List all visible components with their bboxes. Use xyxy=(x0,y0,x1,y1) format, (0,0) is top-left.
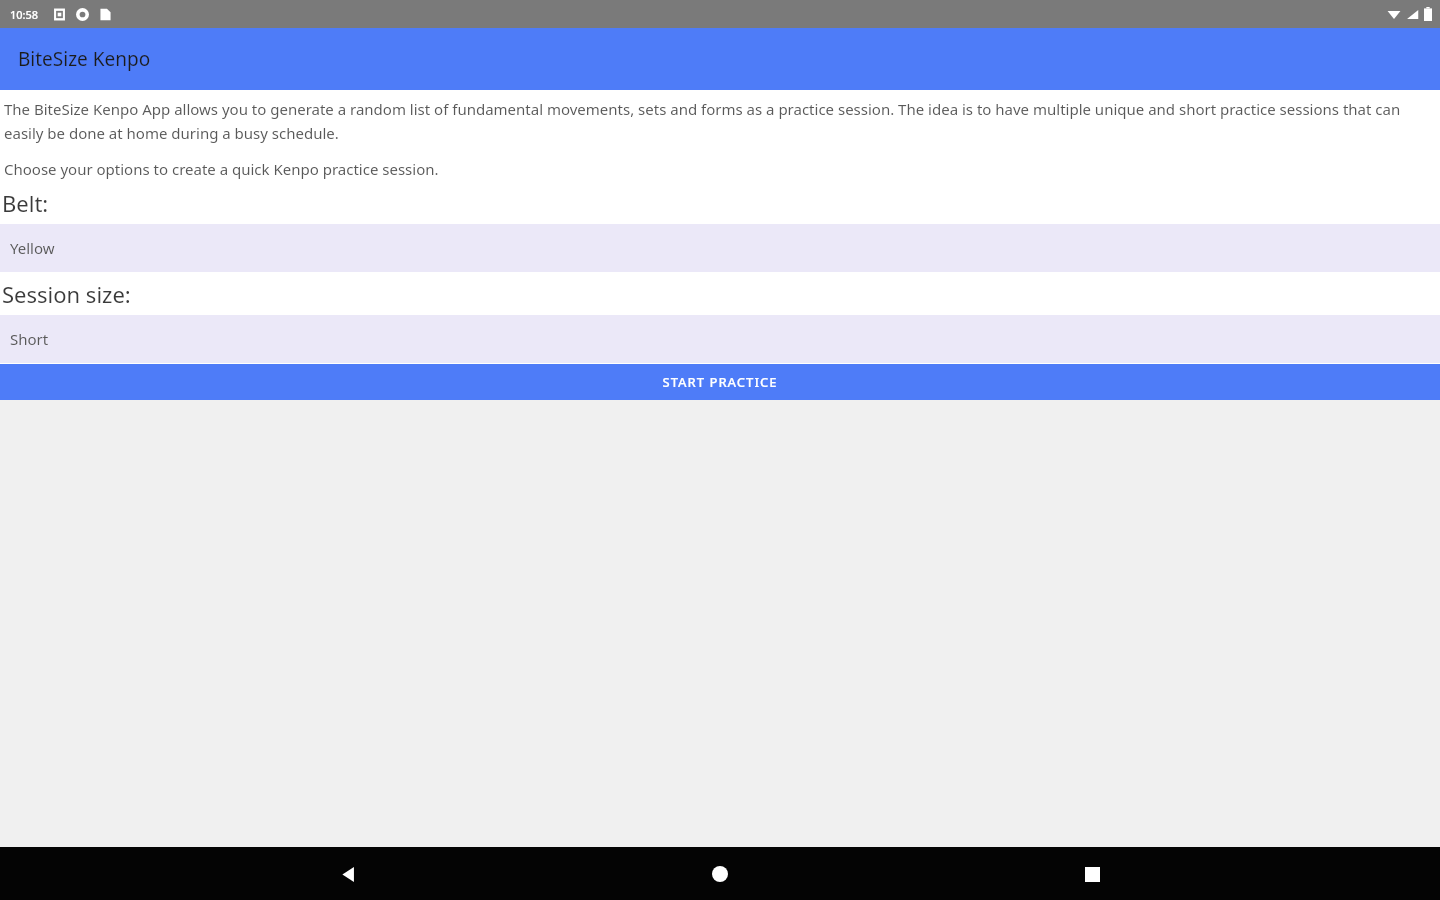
staticText: START PRACTICE xyxy=(662,373,778,391)
button[interactable]: Short xyxy=(0,315,1440,363)
button[interactable]: Yellow xyxy=(0,224,1440,272)
staticText: Session size: xyxy=(2,279,131,309)
staticText: 10:58 xyxy=(10,7,39,22)
staticText: BiteSize Kenpo xyxy=(18,46,151,72)
staticText: Yellow xyxy=(10,238,55,258)
button[interactable]: Recent apps xyxy=(1068,850,1116,898)
staticText: The BiteSize Kenpo App allows you to gen… xyxy=(4,99,1414,143)
staticText: Belt: xyxy=(2,188,49,218)
staticText: Choose your options to create a quick Ke… xyxy=(4,159,439,179)
staticText: Short xyxy=(10,329,49,349)
button[interactable]: Home xyxy=(696,850,744,898)
button[interactable]: Back xyxy=(324,850,372,898)
button[interactable]: START PRACTICE xyxy=(0,364,1440,400)
